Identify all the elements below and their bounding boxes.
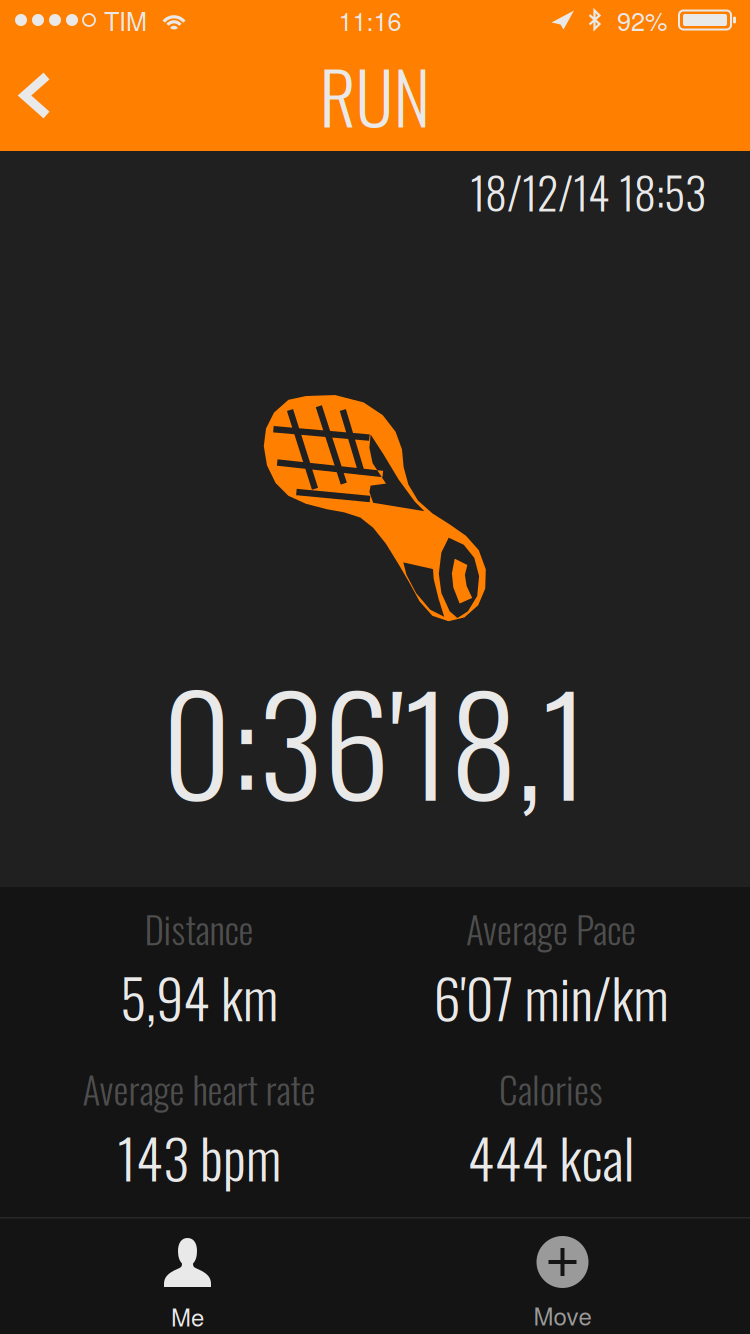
staticText: Calories xyxy=(499,1061,603,1116)
staticText: 11:16 xyxy=(338,2,401,38)
staticText: 6'07 min/km xyxy=(433,956,668,1037)
staticText: 444 kcal xyxy=(467,1116,634,1197)
staticText: Average Pace xyxy=(466,901,636,956)
staticText: 143 bpm xyxy=(117,1116,281,1197)
staticText: Average heart rate xyxy=(82,1061,315,1116)
staticText: Move xyxy=(533,1298,591,1332)
staticText: 92% xyxy=(617,2,668,38)
staticText: Distance xyxy=(144,901,253,956)
staticText: 0:36'18,1 xyxy=(162,640,588,840)
staticText: 18/12/14 18:53 xyxy=(470,159,706,224)
staticText: TIM xyxy=(104,2,147,38)
button[interactable]: Back xyxy=(0,45,77,145)
button[interactable]: Move xyxy=(375,1217,750,1334)
staticText: Me xyxy=(171,1299,204,1333)
staticText: 5,94 km xyxy=(120,956,278,1037)
button[interactable]: Me xyxy=(0,1217,375,1334)
staticText: RUN xyxy=(319,43,430,148)
